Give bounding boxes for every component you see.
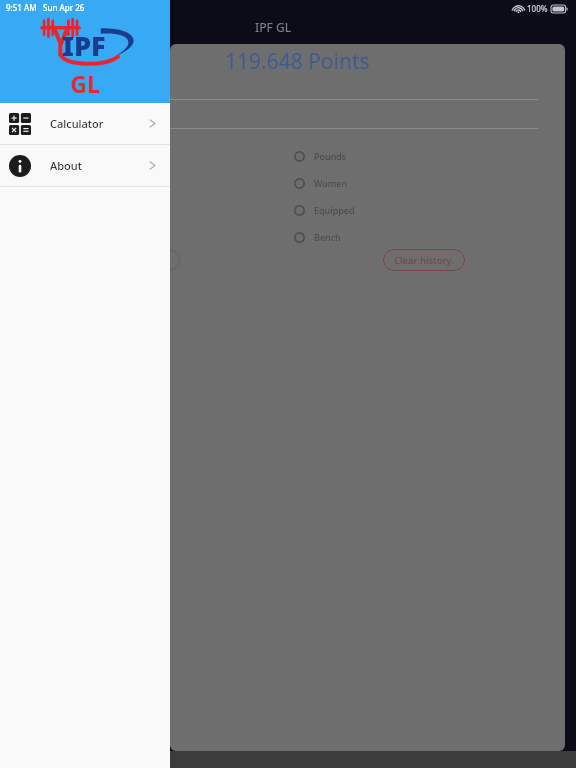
- staticText: Calculator: [50, 116, 104, 131]
- staticText: GL: [70, 68, 100, 99]
- button[interactable]: Calculator: [0, 103, 170, 144]
- staticText: 9:51 AM: [6, 2, 37, 13]
- staticText: About: [50, 158, 82, 173]
- staticText: IPF: [62, 27, 106, 64]
- button[interactable]: [170, 249, 180, 271]
- staticText: IPF GL: [255, 19, 292, 35]
- button[interactable]: Equipped: [294, 199, 355, 221]
- staticText: Clear history.: [394, 254, 454, 267]
- button[interactable]: Clear history.: [383, 249, 465, 271]
- button[interactable]: About: [0, 145, 170, 186]
- staticText: 119.648 Points: [225, 47, 370, 76]
- staticText: Women: [314, 177, 348, 189]
- staticText: Bench: [314, 231, 341, 243]
- staticText: Sun Apr 26: [43, 2, 85, 13]
- button[interactable]: Bench: [294, 226, 341, 248]
- button[interactable]: Pounds: [294, 145, 347, 167]
- staticText: Pounds: [314, 150, 347, 162]
- button[interactable]: Women: [294, 172, 348, 194]
- staticText: 100%: [527, 3, 548, 14]
- staticText: Equipped: [314, 204, 355, 216]
